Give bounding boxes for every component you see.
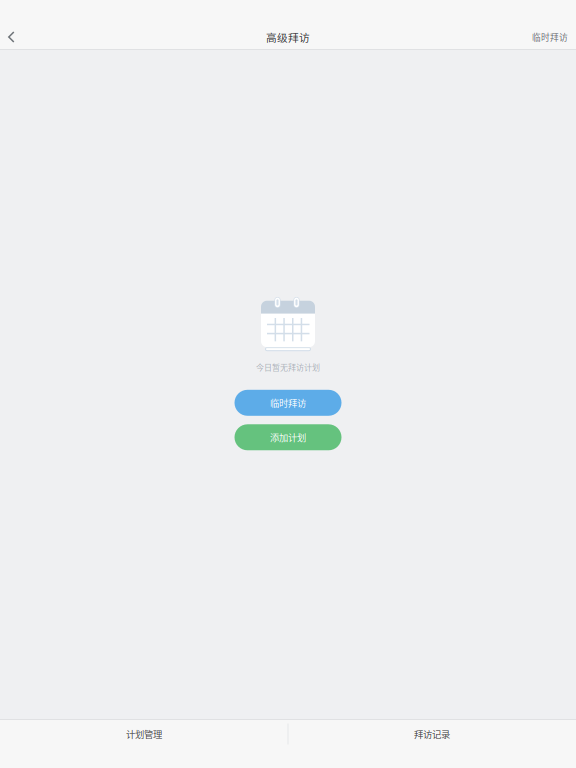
staticText: 添加计划 [270,430,306,444]
staticText: 今日暂无拜访计划 [256,361,320,373]
button[interactable]: 临时拜访 [527,24,573,50]
staticText: 临时拜访 [270,396,306,409]
button[interactable]: 拜访记录 [288,720,576,748]
button[interactable]: Back [0,24,23,50]
button[interactable]: 临时拜访 [234,390,341,416]
staticText: 高级拜访 [266,29,310,45]
button[interactable]: 计划管理 [0,720,288,748]
button[interactable]: 添加计划 [234,424,341,450]
staticText: 临时拜访 [532,31,568,43]
staticText: 拜访记录 [414,727,450,741]
staticText: 计划管理 [126,727,162,741]
